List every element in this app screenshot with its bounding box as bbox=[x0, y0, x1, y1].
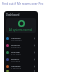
staticText: All systems normal bbox=[9, 28, 33, 32]
staticText: Charging bbox=[11, 60, 21, 63]
staticText: Security bbox=[11, 43, 20, 46]
button[interactable]: Backup bbox=[4, 70, 38, 72]
staticText: Connected bbox=[11, 39, 22, 42]
staticText: Dashboard bbox=[6, 13, 20, 17]
button[interactable]: Battery bbox=[4, 56, 38, 63]
button[interactable]: Network bbox=[4, 35, 38, 42]
button[interactable]: Storage bbox=[4, 49, 38, 56]
staticText: Updates bbox=[11, 64, 21, 67]
button[interactable]: Updates bbox=[4, 63, 38, 70]
staticText: Storage bbox=[11, 50, 20, 53]
staticText: 64% used bbox=[11, 53, 21, 56]
button[interactable]: Security bbox=[4, 42, 38, 49]
staticText: 2 pending bbox=[11, 67, 21, 70]
staticText: Find out if Mr rooms over Pro bbox=[2, 2, 44, 6]
staticText: Network bbox=[11, 36, 21, 39]
staticText: Protected bbox=[11, 46, 21, 49]
staticText: Battery bbox=[11, 57, 20, 60]
